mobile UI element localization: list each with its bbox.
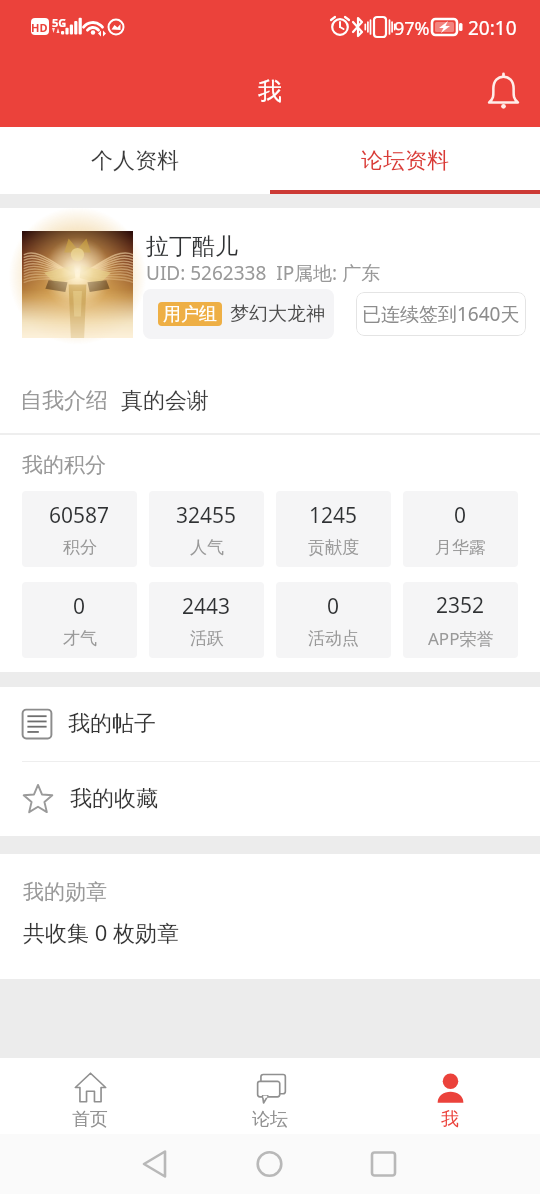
staticText: 个人资料 bbox=[91, 147, 179, 175]
staticText: UID: 5262338 IP属地: 广东 bbox=[146, 260, 381, 286]
staticText: 2443 bbox=[182, 592, 231, 621]
button[interactable]: 我 bbox=[360, 1058, 540, 1134]
staticText: 人气 bbox=[190, 537, 224, 558]
staticText: 贡献度 bbox=[308, 537, 359, 558]
staticText: 我 bbox=[441, 1108, 459, 1131]
staticText: 才气 bbox=[63, 628, 97, 649]
staticText: 拉丁酷儿 bbox=[146, 232, 238, 261]
staticText: 共收集 0 枚勋章 bbox=[23, 917, 180, 947]
staticText: 我的积分 bbox=[22, 452, 106, 478]
button[interactable]: 0 bbox=[403, 491, 518, 567]
staticText: 首页 bbox=[72, 1108, 108, 1131]
button[interactable]: 个人资料 bbox=[0, 127, 270, 194]
staticText: 60587 bbox=[49, 501, 110, 530]
staticText: 论坛 bbox=[252, 1108, 288, 1131]
button[interactable]: 60587 bbox=[22, 491, 137, 567]
staticText: 我的收藏 bbox=[70, 785, 158, 813]
button[interactable]: 2352 bbox=[403, 582, 518, 658]
button[interactable]: 已连续签到1640天 bbox=[356, 292, 526, 336]
staticText: 月华露 bbox=[435, 537, 486, 558]
staticText: APP荣誉 bbox=[428, 627, 494, 650]
staticText: 梦幻大龙神 bbox=[230, 302, 325, 326]
button[interactable]: 论坛 bbox=[180, 1058, 360, 1134]
staticText: 2352 bbox=[436, 591, 485, 620]
staticText: 活跃 bbox=[190, 628, 224, 649]
button[interactable]: 0 bbox=[22, 582, 137, 658]
button[interactable]: 我的帖子 bbox=[0, 687, 540, 761]
staticText: 论坛资料 bbox=[361, 147, 449, 175]
staticText: 我 bbox=[258, 76, 282, 106]
staticText: 我的帖子 bbox=[68, 710, 156, 738]
staticText: 0 bbox=[327, 592, 340, 621]
button[interactable]: 1245 bbox=[276, 491, 391, 567]
button[interactable]: 0 bbox=[276, 582, 391, 658]
button[interactable]: 用户组 bbox=[143, 289, 334, 339]
staticText: 97% bbox=[394, 16, 430, 41]
staticText: 1245 bbox=[309, 501, 358, 530]
button[interactable]: 2443 bbox=[149, 582, 264, 658]
button[interactable]: Avatar bbox=[22, 231, 133, 338]
button[interactable]: Notifications bbox=[477, 65, 529, 117]
staticText: 已连续签到1640天 bbox=[362, 301, 520, 327]
button[interactable]: 我的收藏 bbox=[0, 762, 540, 836]
button[interactable]: 32455 bbox=[149, 491, 264, 567]
staticText: 32455 bbox=[176, 501, 237, 530]
staticText: 20:10 bbox=[468, 15, 517, 41]
staticText: 积分 bbox=[63, 537, 97, 558]
button[interactable]: 首页 bbox=[0, 1058, 180, 1134]
staticText: 5G bbox=[52, 15, 67, 30]
staticText: HD bbox=[31, 20, 48, 35]
button[interactable]: 论坛资料 bbox=[270, 127, 540, 194]
staticText: 0 bbox=[73, 592, 86, 621]
staticText: 自我介绍 bbox=[20, 387, 108, 415]
staticText: 活动点 bbox=[308, 628, 359, 649]
staticText: 0 bbox=[454, 501, 467, 530]
staticText: 用户组 bbox=[163, 303, 217, 326]
staticText: 真的会谢 bbox=[121, 387, 209, 415]
staticText: 我的勋章 bbox=[23, 879, 107, 905]
